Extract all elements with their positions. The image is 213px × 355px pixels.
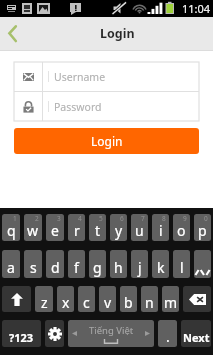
staticText: e (51, 221, 59, 240)
button[interactable]: x (57, 286, 74, 312)
staticText: h (114, 258, 123, 277)
staticText: i (159, 221, 163, 240)
staticText: 5 (99, 214, 103, 223)
staticText: o (177, 221, 186, 240)
staticText: Username (54, 70, 106, 84)
staticText: g (93, 258, 102, 277)
staticText: j (138, 258, 142, 277)
staticText: 6 (120, 214, 124, 223)
staticText: k (157, 258, 165, 277)
staticText: 11:04 (182, 1, 211, 16)
staticText: 9 (183, 214, 187, 223)
button[interactable]: z (35, 286, 53, 312)
staticText: n (145, 293, 154, 312)
staticText: 8 (162, 214, 166, 223)
staticText: Login (100, 25, 135, 42)
button[interactable]: a (2, 250, 20, 278)
staticText: t (95, 221, 101, 240)
staticText: Tiếng Việt (89, 324, 134, 337)
button[interactable]: m (162, 286, 179, 312)
button[interactable]: Settings (45, 320, 64, 347)
staticText: 1 (13, 214, 17, 223)
button[interactable]: q (2, 214, 20, 241)
button[interactable]: ?123 (2, 320, 41, 347)
button[interactable]: y (110, 214, 127, 241)
staticText: 0 (204, 214, 208, 223)
button[interactable]: . (158, 320, 177, 347)
button[interactable]: f (68, 250, 85, 278)
button[interactable]: t (89, 214, 106, 241)
staticText: y (115, 221, 123, 240)
button[interactable]: n (141, 286, 158, 312)
staticText: 7 (141, 214, 145, 223)
button[interactable]: h (110, 250, 127, 278)
button[interactable]: j (131, 250, 148, 278)
button[interactable]: i (152, 214, 169, 241)
staticText: Login (91, 133, 123, 149)
button[interactable]: Tiếng Việt (68, 320, 154, 347)
button[interactable]: l (173, 250, 190, 278)
staticText: ?123 (9, 330, 34, 345)
staticText: u (135, 221, 144, 240)
button[interactable]: w (24, 214, 42, 241)
staticText: s (30, 258, 37, 277)
staticText: z (41, 293, 48, 312)
button[interactable]: o (173, 214, 190, 241)
staticText: 2 (35, 214, 39, 223)
staticText: 4 (78, 214, 82, 223)
staticText: d (51, 258, 60, 277)
staticText: f (74, 258, 79, 277)
button[interactable]: s (24, 250, 42, 278)
staticText: m (164, 293, 178, 312)
button[interactable]: p (194, 214, 211, 241)
staticText: a (7, 258, 15, 277)
staticText: l (180, 258, 184, 277)
button[interactable]: d (46, 250, 64, 278)
button[interactable]: Username (14, 62, 199, 91)
staticText: x (62, 293, 70, 312)
button[interactable]: e (46, 214, 64, 241)
staticText: b (124, 293, 133, 312)
button[interactable]: Password (14, 92, 199, 121)
button[interactable]: Shift (2, 286, 31, 312)
button[interactable]: b (120, 286, 137, 312)
button[interactable]: Accents (194, 250, 211, 278)
staticText: v (104, 293, 112, 312)
button[interactable]: u (131, 214, 148, 241)
button[interactable]: g (89, 250, 106, 278)
button[interactable]: Back (0, 17, 25, 50)
staticText: p (198, 221, 207, 240)
button[interactable]: c (78, 286, 95, 312)
staticText: c (83, 293, 90, 312)
button[interactable]: v (99, 286, 116, 312)
staticText: w (27, 221, 39, 240)
staticText: Password (54, 100, 102, 114)
staticText: 3 (57, 214, 61, 223)
button[interactable]: k (152, 250, 169, 278)
button[interactable]: Next (181, 320, 211, 347)
staticText: Next (183, 330, 210, 345)
staticText: r (74, 221, 80, 240)
staticText: . (166, 327, 170, 346)
button[interactable]: Login (14, 128, 199, 154)
button[interactable]: r (68, 214, 85, 241)
button[interactable]: Backspace (183, 286, 211, 312)
staticText: q (7, 221, 16, 240)
